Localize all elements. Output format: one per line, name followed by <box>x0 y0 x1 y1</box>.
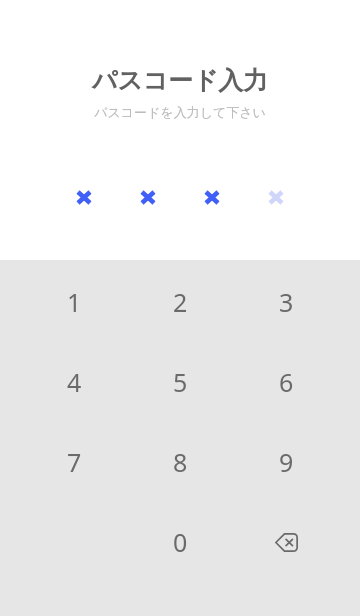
button[interactable]: 3 <box>233 262 339 342</box>
button[interactable]: Backspace <box>233 502 339 582</box>
staticText: 9 <box>279 445 294 479</box>
button[interactable]: 7 <box>21 422 127 502</box>
other: Backspace <box>275 533 298 552</box>
staticText: 0 <box>173 525 188 559</box>
button[interactable]: 9 <box>233 422 339 502</box>
staticText: 5 <box>173 365 188 399</box>
staticText: 6 <box>279 365 294 399</box>
staticText: 2 <box>173 285 188 319</box>
button[interactable]: 6 <box>233 342 339 422</box>
button[interactable]: 2 <box>127 262 233 342</box>
button[interactable]: 5 <box>127 342 233 422</box>
staticText: パスコードを入力して下さい <box>94 104 266 120</box>
button[interactable]: 8 <box>127 422 233 502</box>
button[interactable]: 1 <box>21 262 127 342</box>
button[interactable]: 4 <box>21 342 127 422</box>
staticText: パスコード入力 <box>92 65 268 96</box>
staticText: 8 <box>173 445 188 479</box>
staticText: 7 <box>67 445 82 479</box>
button[interactable]: 0 <box>127 502 233 582</box>
staticText: 4 <box>67 365 82 399</box>
staticText: 1 <box>67 285 82 319</box>
staticText: 3 <box>279 285 294 319</box>
